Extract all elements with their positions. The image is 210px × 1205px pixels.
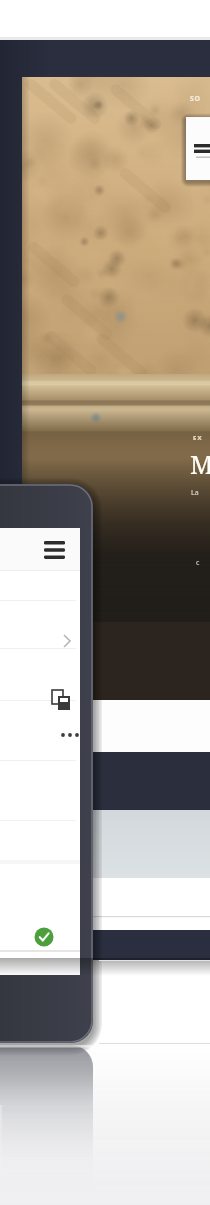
button[interactable]: Site logo (190, 94, 201, 104)
button[interactable]: Menu (40, 536, 70, 562)
button[interactable]: Copy (46, 682, 80, 714)
staticText: c (196, 558, 200, 568)
button[interactable]: Feature card (186, 117, 210, 180)
staticText: M (190, 447, 210, 481)
button[interactable]: Site logo (0, 0, 210, 1205)
staticText: SO (190, 94, 201, 104)
button[interactable]: More options (56, 726, 86, 746)
staticText: La (191, 488, 199, 498)
button[interactable]: Open item (52, 620, 86, 660)
button[interactable]: EX (193, 434, 203, 442)
button[interactable]: Completed (30, 922, 62, 954)
staticText: EX (193, 434, 203, 442)
